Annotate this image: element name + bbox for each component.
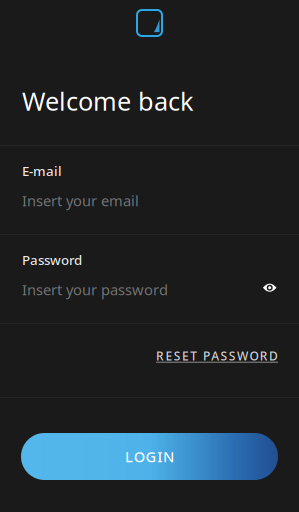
staticText: Insert your password	[22, 280, 168, 299]
staticText: E-mail	[22, 162, 62, 180]
button[interactable]: Show password	[262, 280, 277, 296]
button[interactable]: LOGIN	[21, 433, 278, 480]
staticText: Welcome back	[22, 84, 194, 118]
staticText: Insert your email	[22, 191, 139, 210]
staticText: Password	[22, 251, 82, 269]
staticText: RESET PASSWORD	[156, 348, 278, 364]
staticText: LOGIN	[125, 447, 174, 466]
button[interactable]: Password	[0, 235, 299, 323]
button[interactable]: RESET PASSWORD	[156, 344, 278, 368]
button[interactable]: E-mail	[0, 146, 299, 234]
